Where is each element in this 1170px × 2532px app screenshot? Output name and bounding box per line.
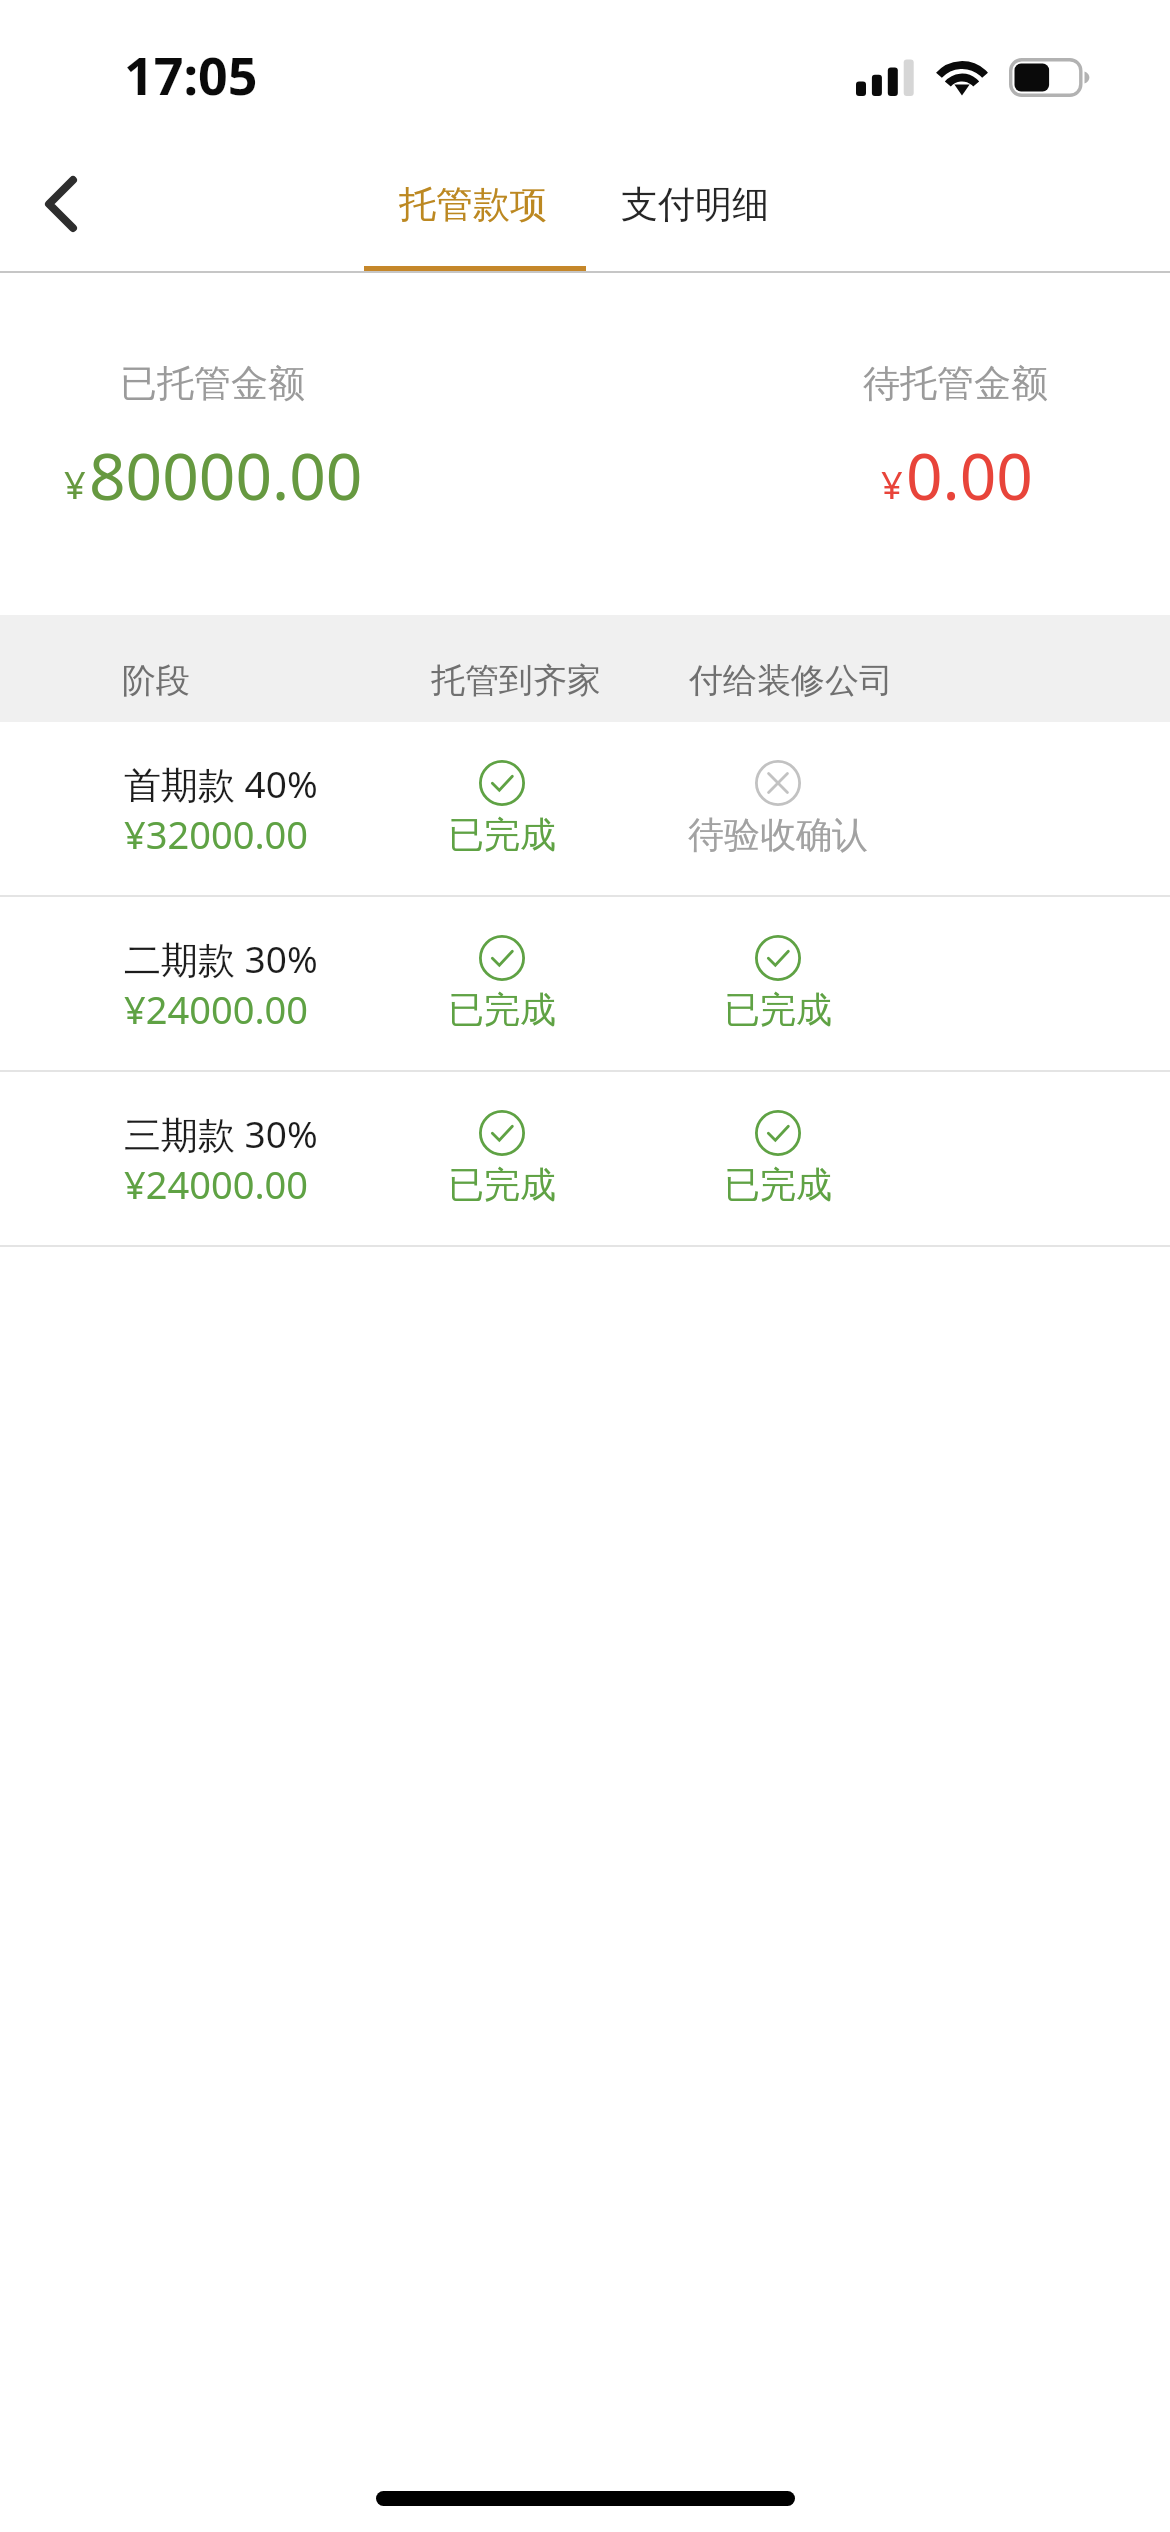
button[interactable]: Back xyxy=(8,144,113,264)
staticText: 付给装修公司 xyxy=(689,659,893,702)
staticText: ¥ xyxy=(64,458,86,510)
staticText: 二期款 30% xyxy=(124,933,318,984)
button[interactable]: 三期款 30% xyxy=(0,1072,1170,1247)
staticText: ¥24000.00 xyxy=(124,1158,309,1210)
staticText: 80000.00 xyxy=(89,432,363,519)
staticText: 托管到齐家 xyxy=(431,659,601,702)
staticText: 已完成 xyxy=(448,987,556,1032)
staticText: 首期款 40% xyxy=(124,758,318,809)
staticText: 已完成 xyxy=(448,812,556,857)
staticText: 已完成 xyxy=(724,1162,832,1207)
staticText: 支付明细 xyxy=(621,181,769,228)
staticText: ¥32000.00 xyxy=(124,808,309,860)
staticText: 阶段 xyxy=(122,659,190,702)
staticText: 已完成 xyxy=(448,1162,556,1207)
staticText: 待托管金额 xyxy=(863,360,1048,407)
staticText: ¥ xyxy=(881,458,903,510)
staticText: 17:05 xyxy=(124,39,258,110)
button[interactable]: 托管款项 xyxy=(362,140,584,273)
staticText: ¥24000.00 xyxy=(124,983,309,1035)
staticText: 三期款 30% xyxy=(124,1108,318,1159)
button[interactable]: 支付明细 xyxy=(584,140,806,273)
staticText: 待验收确认 xyxy=(688,812,868,857)
staticText: 已托管金额 xyxy=(120,360,305,407)
staticText: 0.00 xyxy=(906,432,1033,519)
staticText: 托管款项 xyxy=(399,181,547,228)
staticText: 已完成 xyxy=(724,987,832,1032)
button[interactable]: 首期款 40% xyxy=(0,722,1170,897)
button[interactable]: 二期款 30% xyxy=(0,897,1170,1072)
